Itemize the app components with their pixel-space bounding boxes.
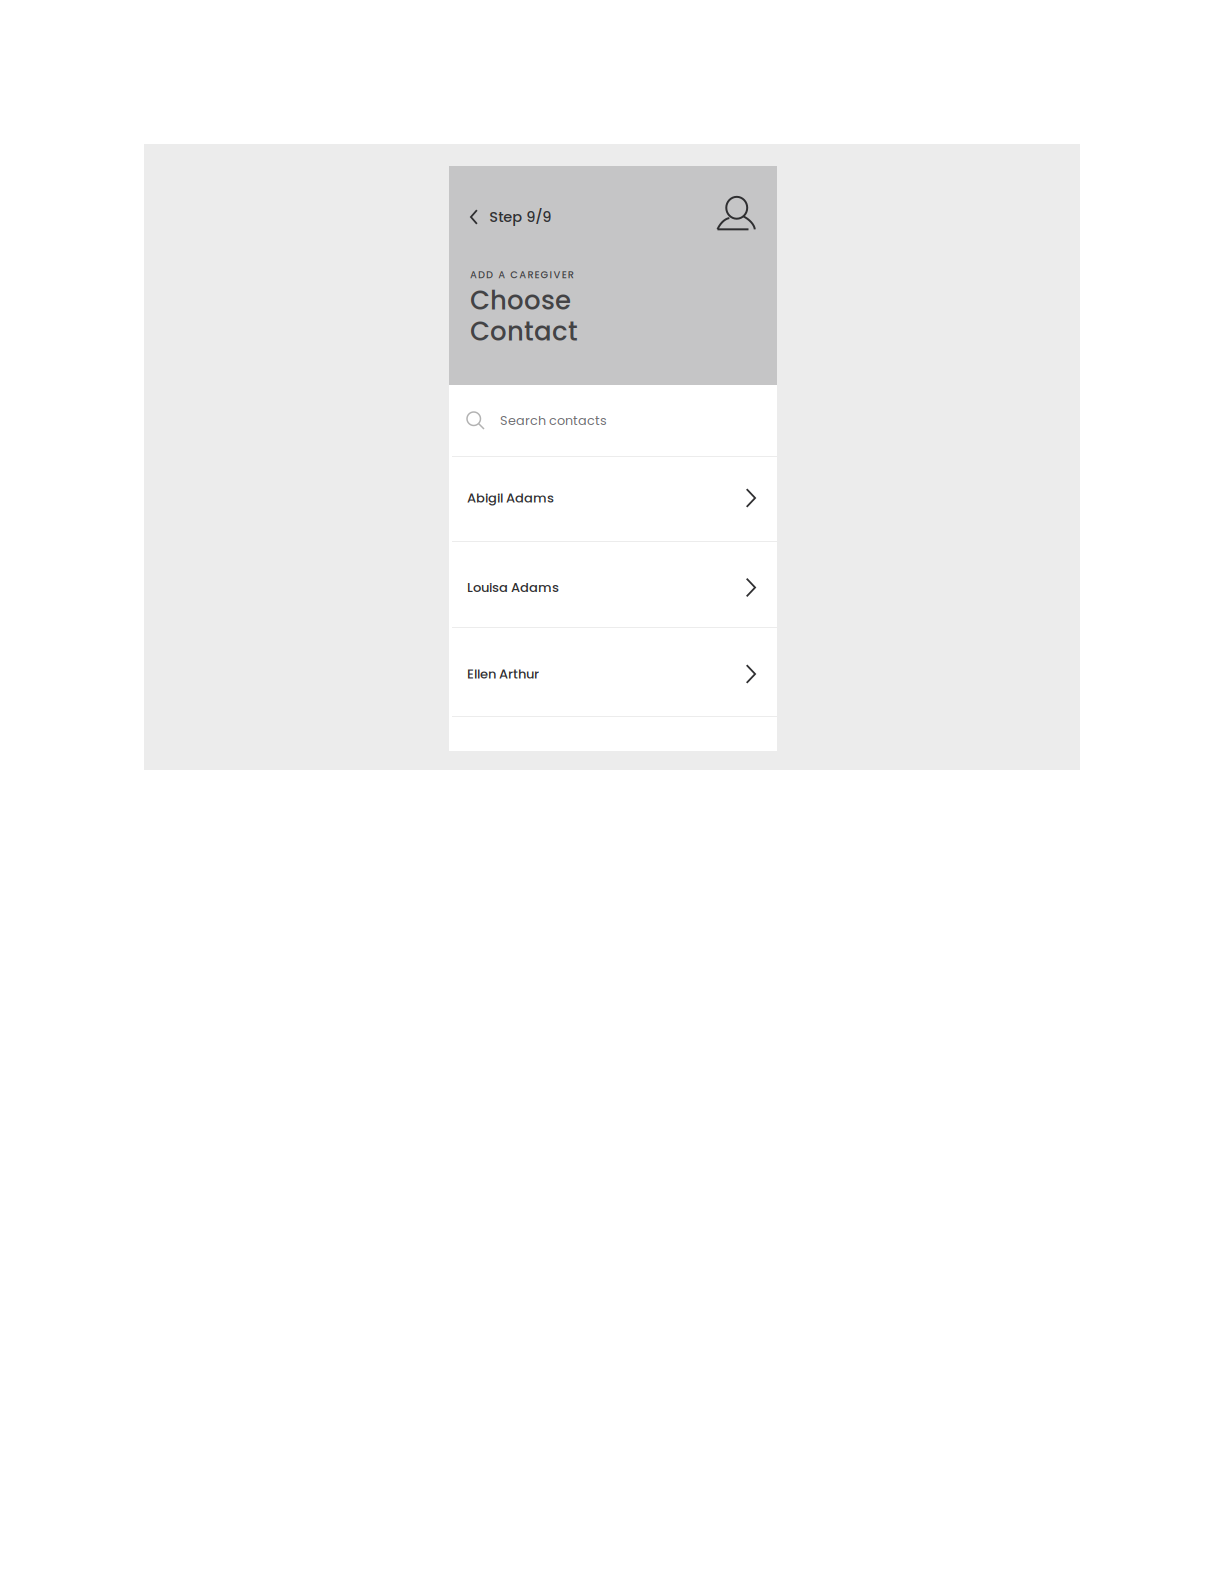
button[interactable]: Louisa Adams	[449, 542, 777, 627]
staticText: Louisa Adams	[467, 578, 559, 597]
staticText: Search contacts	[500, 411, 607, 429]
staticText: ADD A CAREGIVER	[470, 268, 574, 282]
staticText: Contact	[470, 313, 578, 349]
button[interactable]: Account	[716, 200, 756, 234]
button[interactable]: Step 9/9	[468, 202, 553, 232]
staticText: Step 9/9	[489, 207, 551, 227]
button[interactable]: Abigil Adams	[449, 457, 777, 541]
staticText: Ellen Arthur	[467, 665, 539, 683]
button[interactable]: Ellen Arthur	[449, 628, 777, 716]
staticText: Choose	[470, 282, 571, 318]
button[interactable]: Search contacts	[449, 385, 777, 456]
staticText: Abigil Adams	[467, 489, 554, 507]
